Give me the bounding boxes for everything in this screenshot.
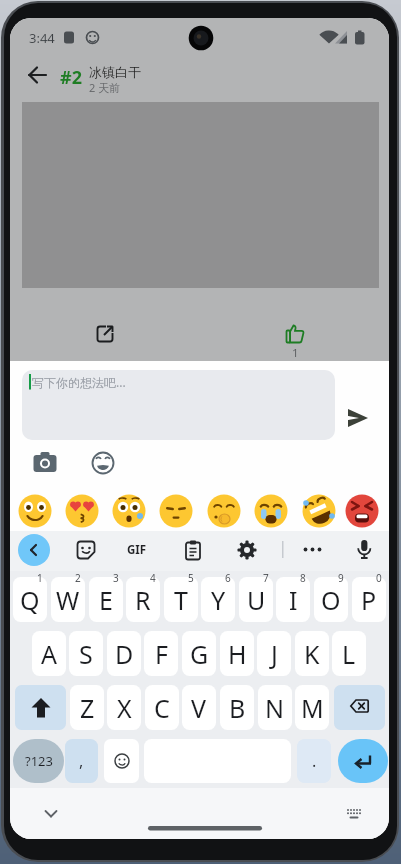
button[interactable]: Z — [70, 685, 104, 730]
button[interactable] — [18, 534, 50, 566]
staticText: S — [79, 637, 93, 671]
staticText: J — [271, 637, 278, 671]
staticText: . — [312, 750, 317, 772]
staticText: F — [155, 637, 168, 671]
button[interactable] — [301, 493, 337, 529]
staticText: E — [99, 583, 113, 617]
staticText: 9 — [338, 571, 344, 585]
staticText: 4 — [150, 571, 156, 585]
button[interactable] — [158, 493, 194, 529]
button[interactable] — [31, 449, 59, 476]
staticText: ?123 — [25, 752, 53, 770]
button[interactable]: B — [220, 685, 254, 730]
button[interactable]: W — [51, 577, 85, 622]
button[interactable]: H — [220, 631, 254, 676]
staticText: Y — [211, 583, 226, 617]
button[interactable] — [75, 539, 97, 561]
button[interactable] — [22, 60, 54, 92]
staticText: 写下你的想法吧... — [32, 374, 126, 390]
button[interactable]: , — [65, 739, 98, 783]
staticText: 2 天前 — [89, 80, 121, 95]
staticText: P — [361, 583, 377, 617]
staticText: #2 — [60, 65, 82, 89]
button[interactable] — [182, 539, 204, 561]
button[interactable] — [93, 322, 117, 346]
staticText: 3 — [113, 571, 119, 585]
staticText: U — [247, 583, 266, 617]
button[interactable]: U — [239, 577, 273, 622]
button[interactable] — [111, 493, 147, 529]
button[interactable]: F — [144, 631, 178, 676]
button[interactable]: V — [182, 685, 216, 730]
button[interactable]: T — [164, 577, 198, 622]
button[interactable] — [338, 739, 388, 783]
staticText: 7 — [263, 571, 269, 585]
staticText: T — [174, 583, 188, 617]
button[interactable]: M — [295, 685, 329, 730]
staticText: H — [228, 637, 247, 671]
button[interactable] — [334, 685, 385, 730]
staticText: D — [115, 637, 134, 671]
staticText: GIF — [127, 542, 147, 558]
button[interactable] — [301, 539, 324, 560]
staticText: , — [79, 750, 84, 772]
button[interactable] — [353, 538, 375, 561]
button[interactable] — [64, 493, 100, 529]
staticText: 3:44 — [29, 29, 55, 47]
button[interactable]: O — [314, 577, 348, 622]
button[interactable] — [236, 539, 258, 561]
button[interactable] — [283, 322, 307, 346]
staticText: X — [117, 691, 132, 725]
button[interactable]: C — [145, 685, 179, 730]
button[interactable] — [15, 685, 66, 730]
button[interactable] — [344, 493, 380, 529]
button[interactable] — [344, 405, 372, 431]
staticText: C — [154, 691, 170, 725]
button[interactable]: ?123 — [13, 739, 64, 783]
button[interactable] — [90, 450, 116, 476]
button[interactable] — [253, 493, 289, 529]
staticText: 1 — [37, 571, 43, 585]
staticText: I — [289, 583, 298, 617]
button[interactable] — [22, 370, 335, 440]
button[interactable] — [343, 803, 365, 825]
staticText: 8 — [300, 571, 306, 585]
button[interactable]: N — [258, 685, 292, 730]
button[interactable]: R — [126, 577, 160, 622]
staticText: L — [342, 637, 356, 671]
staticText: V — [191, 691, 207, 725]
staticText: 0 — [376, 571, 382, 585]
staticText: R — [135, 583, 151, 617]
button[interactable] — [104, 739, 139, 783]
button[interactable]: Q — [13, 577, 47, 622]
staticText: K — [304, 637, 320, 671]
button[interactable]: A — [32, 631, 66, 676]
button[interactable]: Y — [201, 577, 235, 622]
button[interactable] — [38, 801, 64, 827]
button[interactable]: S — [69, 631, 103, 676]
button[interactable] — [206, 493, 242, 529]
staticText: Z — [80, 691, 95, 725]
button[interactable] — [17, 493, 53, 529]
button[interactable]: D — [107, 631, 141, 676]
staticText: 5 — [188, 571, 194, 585]
button[interactable]: I — [276, 577, 310, 622]
staticText: W — [56, 583, 80, 617]
staticText: 1 — [292, 345, 299, 361]
button[interactable]: J — [257, 631, 291, 676]
button[interactable]: . — [297, 739, 331, 783]
button[interactable]: P — [352, 577, 386, 622]
staticText: 6 — [225, 571, 231, 585]
staticText: M — [301, 691, 324, 725]
button[interactable]: E — [89, 577, 123, 622]
button[interactable]: K — [295, 631, 329, 676]
staticText: O — [321, 583, 341, 617]
staticText: 冰镇白干 — [89, 64, 141, 80]
staticText: G — [190, 637, 209, 671]
button[interactable]: X — [107, 685, 141, 730]
button[interactable]: L — [332, 631, 366, 676]
button[interactable]: G — [182, 631, 216, 676]
staticText: Q — [20, 583, 40, 617]
staticText: 2 — [75, 571, 81, 585]
